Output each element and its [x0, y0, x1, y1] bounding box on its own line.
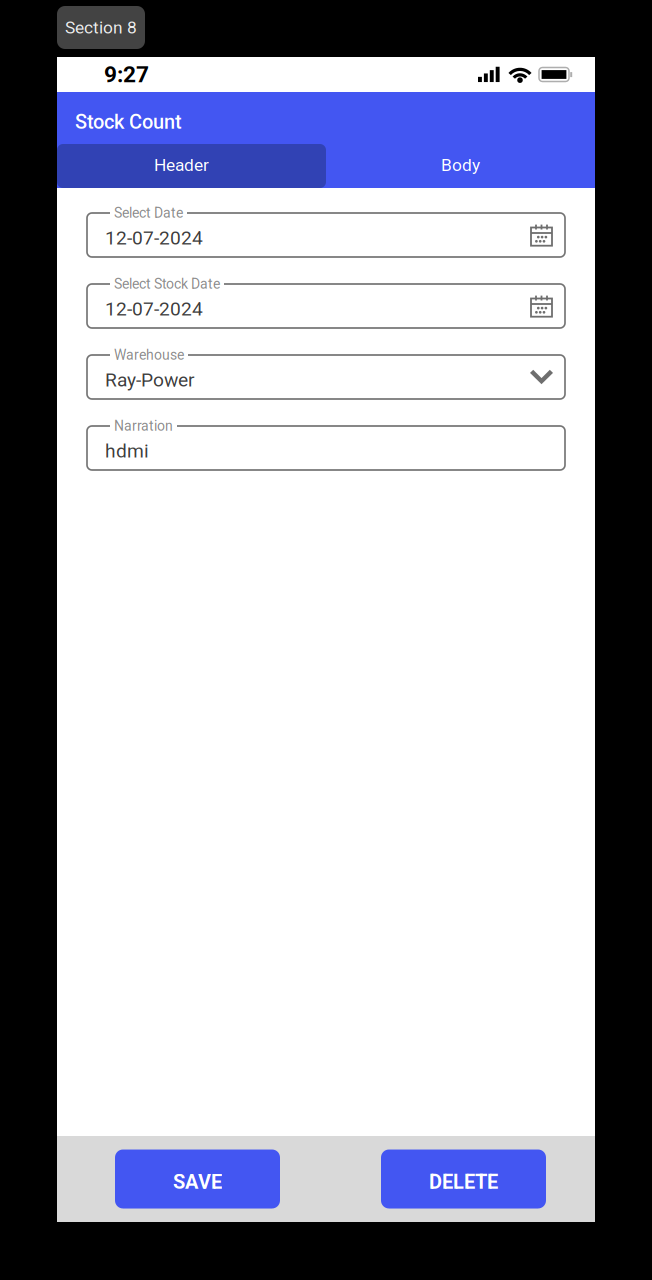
staticText: Select Date — [114, 205, 183, 221]
staticText: Warehouse — [114, 347, 184, 363]
staticText: Narration — [114, 418, 173, 434]
button[interactable]: DELETE — [381, 1149, 546, 1208]
staticText: Select Stock Date — [114, 276, 220, 292]
button[interactable]: Body — [326, 144, 595, 188]
button[interactable]: Header — [57, 144, 326, 188]
staticText: 12-07-2024 — [105, 227, 203, 249]
staticText: Ray-Power — [105, 369, 195, 391]
staticText: Section 8 — [65, 17, 137, 38]
staticText: DELETE — [429, 1170, 498, 1194]
staticText: Stock Count — [75, 110, 182, 134]
staticText: hdmi — [105, 440, 149, 462]
button[interactable]: SAVE — [115, 1149, 280, 1208]
staticText: Header — [154, 155, 209, 175]
staticText: 12-07-2024 — [105, 298, 203, 320]
button[interactable]: Section 8 — [57, 6, 145, 49]
staticText: Body — [441, 155, 480, 175]
staticText: 9:27 — [104, 61, 149, 88]
staticText: SAVE — [173, 1170, 222, 1194]
